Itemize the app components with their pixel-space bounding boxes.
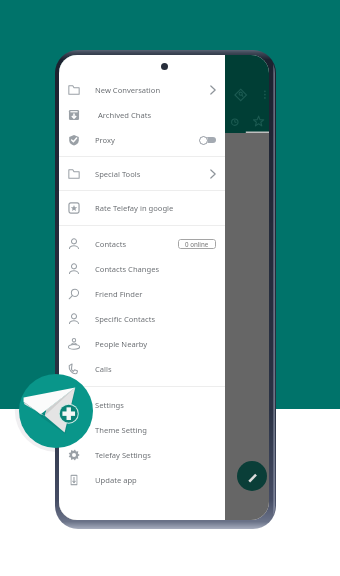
staticText: Telefay Settings	[95, 450, 151, 460]
button[interactable]: Theme Setting	[59, 417, 225, 442]
staticText: Settings	[95, 400, 124, 410]
button[interactable]: Rate Telefay in google	[59, 195, 225, 220]
button[interactable]: Contacts	[59, 231, 225, 256]
staticText: Update app	[95, 475, 137, 485]
staticText: Archived Chats	[98, 110, 152, 120]
button[interactable]: People Nearby	[59, 331, 225, 356]
button[interactable]: New message	[237, 461, 267, 491]
staticText: 0 online	[185, 240, 209, 248]
staticText: Proxy	[95, 135, 115, 145]
staticText: New Conversation	[95, 85, 161, 95]
staticText: Rate Telefay in google	[95, 203, 174, 213]
staticText: Special Tools	[95, 169, 141, 179]
staticText: Theme Setting	[95, 425, 147, 435]
staticText: Friend Finder	[95, 289, 143, 299]
staticText: Contacts	[95, 239, 127, 249]
staticText: Specific Contacts	[95, 314, 156, 324]
button[interactable]: Telefay Settings	[59, 442, 225, 467]
button[interactable]: Contacts Changes	[59, 256, 225, 281]
button[interactable]: Update app	[59, 467, 225, 492]
button[interactable]: Archived Chats	[59, 102, 225, 127]
button[interactable]: New Conversation	[59, 77, 225, 102]
staticText: Contacts Changes	[95, 264, 160, 274]
staticText: People Nearby	[95, 339, 148, 349]
button[interactable]: Proxy	[59, 127, 225, 152]
button[interactable]: Calls	[59, 356, 225, 381]
staticText: Calls	[95, 364, 112, 374]
button[interactable]: Special Tools	[59, 161, 225, 186]
button[interactable]: Specific Contacts	[59, 306, 225, 331]
button[interactable]: Friend Finder	[59, 281, 225, 306]
button[interactable]: Settings	[59, 392, 225, 417]
